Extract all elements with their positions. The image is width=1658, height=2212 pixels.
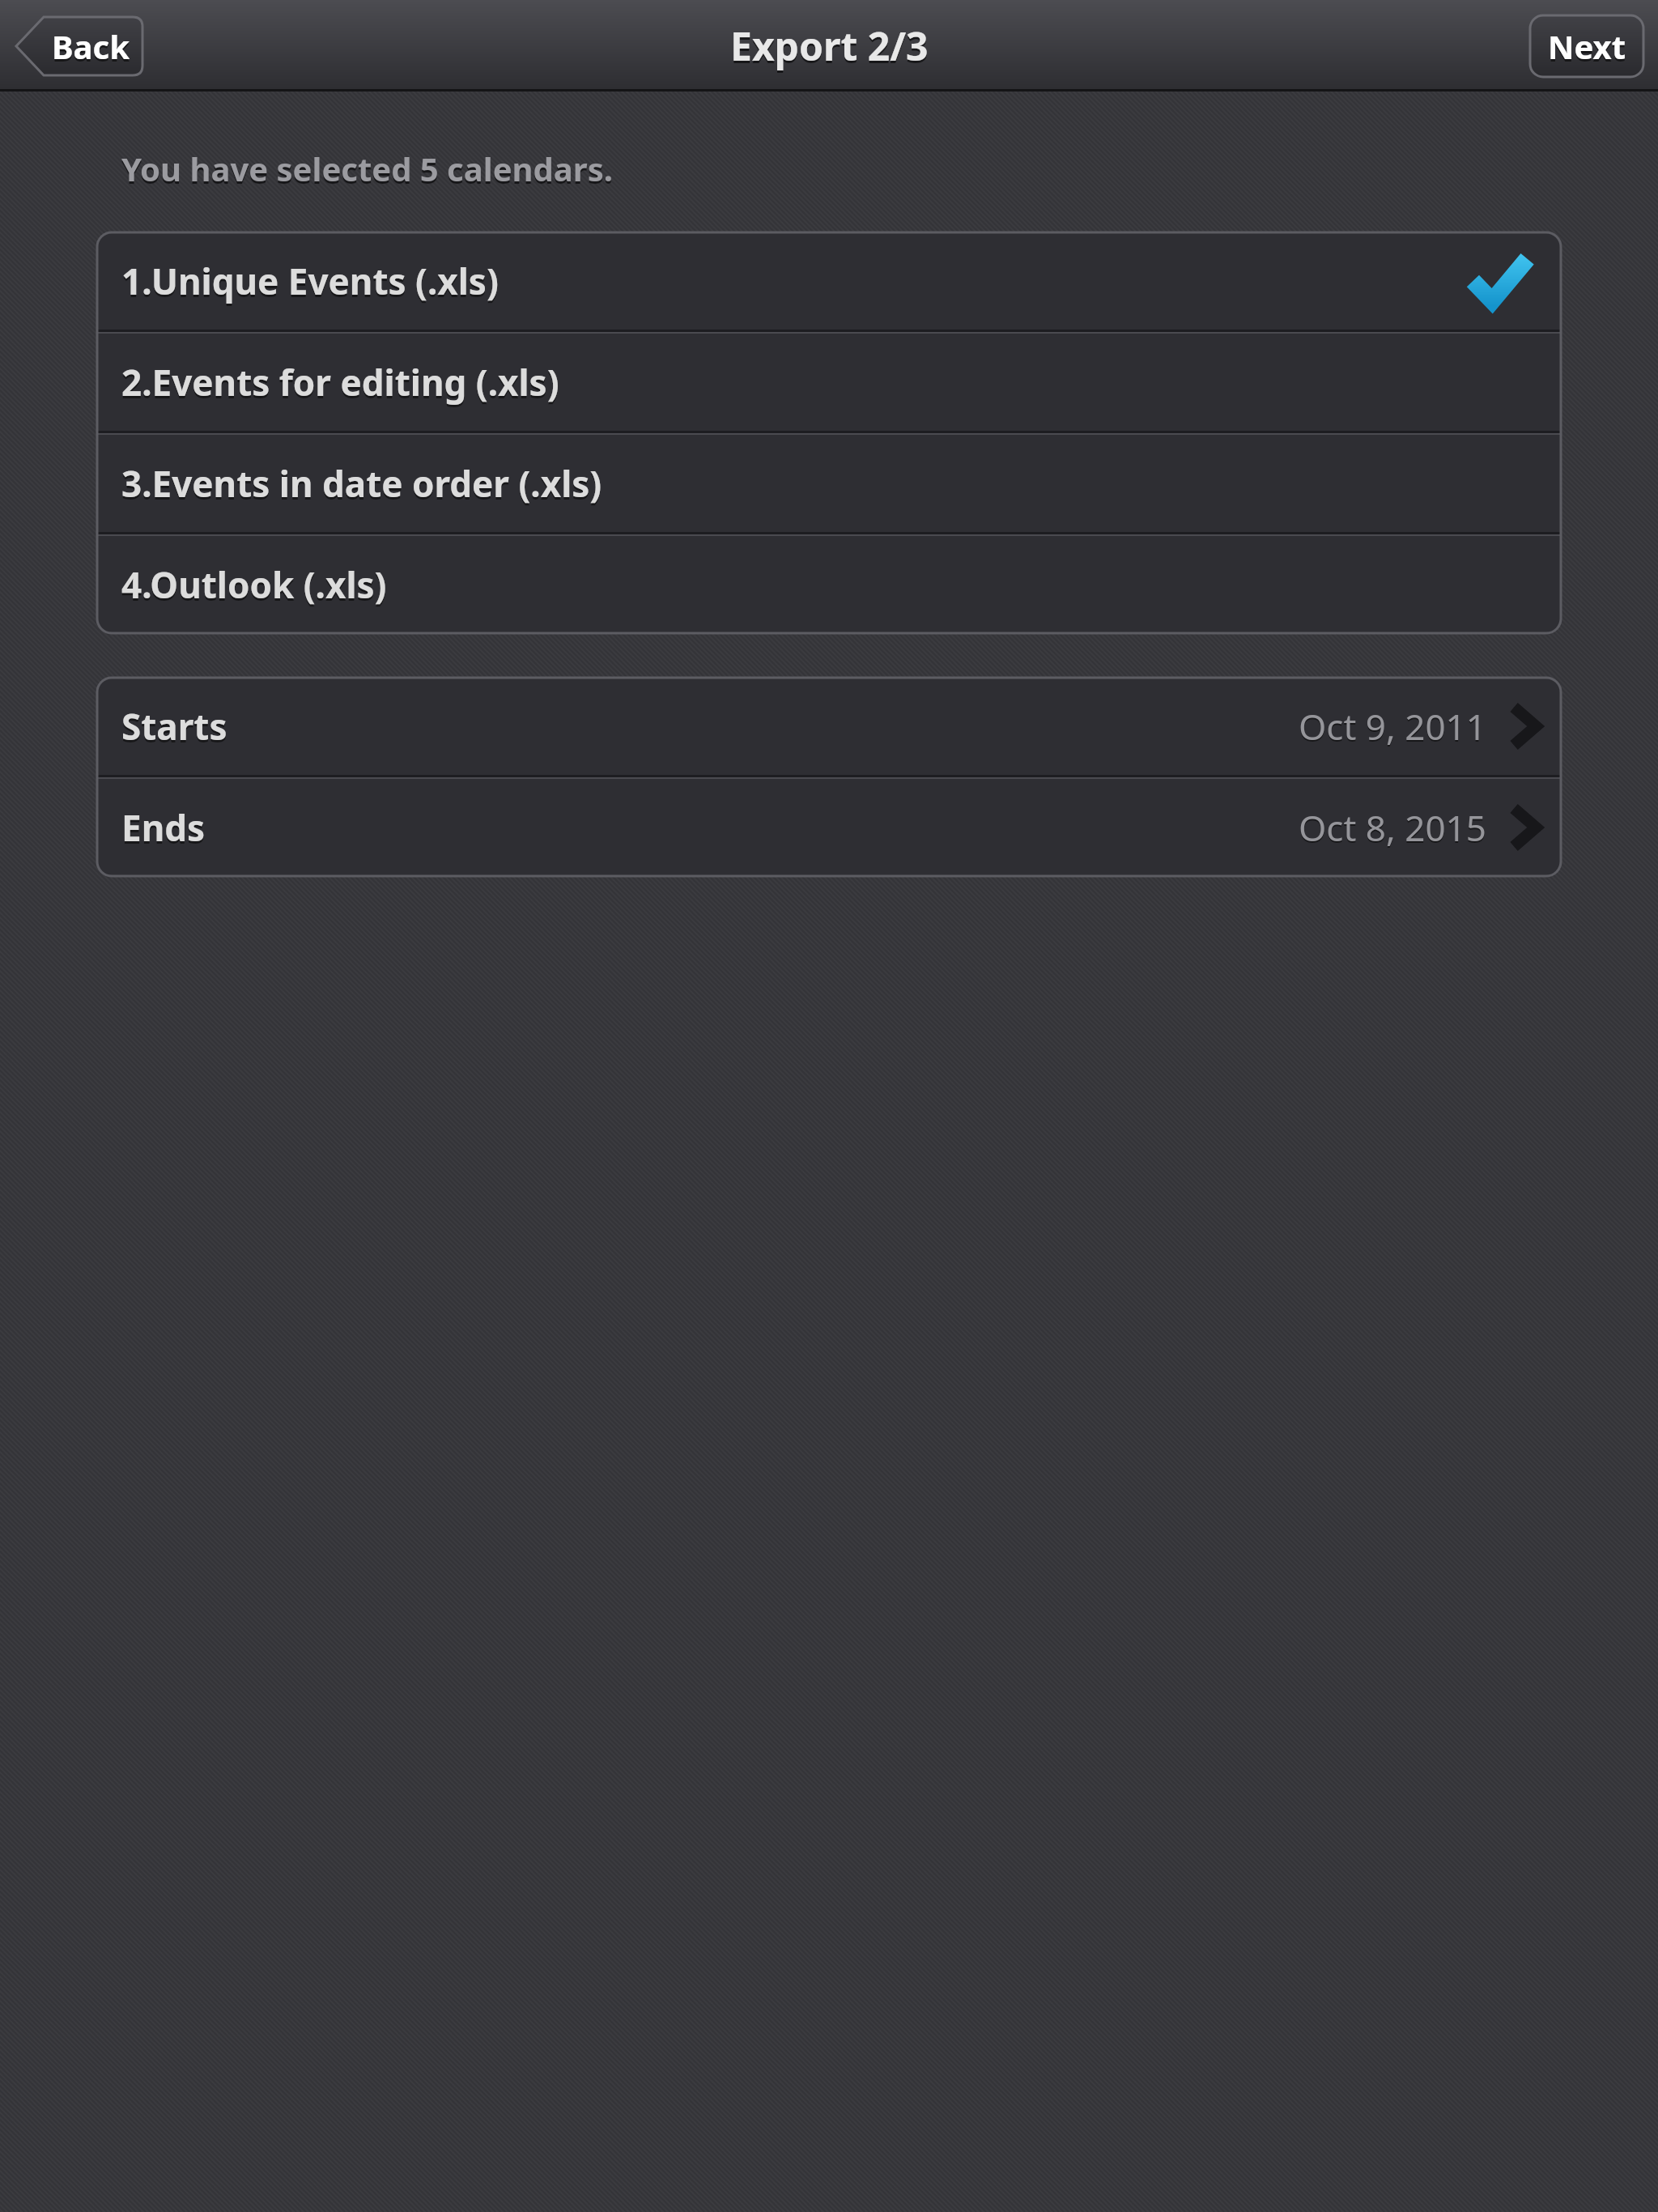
button[interactable]: Ends (97, 779, 1561, 876)
staticText: 2.Events for editing (.xls) (121, 358, 559, 406)
staticText: 2.Events for editing (.xls) (121, 360, 559, 409)
staticText: Export 2/3 (730, 22, 929, 74)
staticText: 3.Events in date order (.xls) (121, 459, 602, 508)
staticText: Export 2/3 (730, 19, 929, 72)
staticText: Oct 9, 2011 (1299, 704, 1486, 752)
button[interactable]: 4.Outlook (.xls) (97, 536, 1561, 633)
staticText: You have selected 5 calendars. (121, 149, 613, 193)
staticText: Next (1548, 24, 1626, 68)
staticText: Back (52, 24, 130, 68)
button[interactable]: 2.Events for editing (.xls) (97, 334, 1561, 431)
button[interactable]: Back (15, 15, 144, 77)
button[interactable]: 1.Unique Events (.xls) (97, 232, 1561, 330)
staticText: 1.Unique Events (.xls) (121, 259, 499, 308)
button[interactable]: Next (1530, 15, 1643, 77)
staticText: Back (52, 27, 130, 70)
staticText: 4.Outlook (.xls) (121, 560, 387, 609)
staticText: 3.Events in date order (.xls) (121, 462, 602, 510)
staticText: Ends (121, 806, 206, 854)
staticText: Oct 9, 2011 (1299, 702, 1486, 751)
staticText: Next (1548, 27, 1626, 70)
button[interactable]: Starts (97, 678, 1561, 775)
staticText: Ends (121, 803, 206, 852)
staticText: Oct 8, 2015 (1299, 803, 1486, 852)
staticText: 1.Unique Events (.xls) (121, 257, 499, 305)
button[interactable]: 3.Events in date order (.xls) (97, 435, 1561, 532)
staticText: Oct 8, 2015 (1299, 805, 1486, 853)
staticText: 4.Outlook (.xls) (121, 563, 387, 611)
staticText: Starts (121, 704, 227, 753)
staticText: Starts (121, 702, 227, 751)
staticText: You have selected 5 calendars. (121, 147, 613, 190)
